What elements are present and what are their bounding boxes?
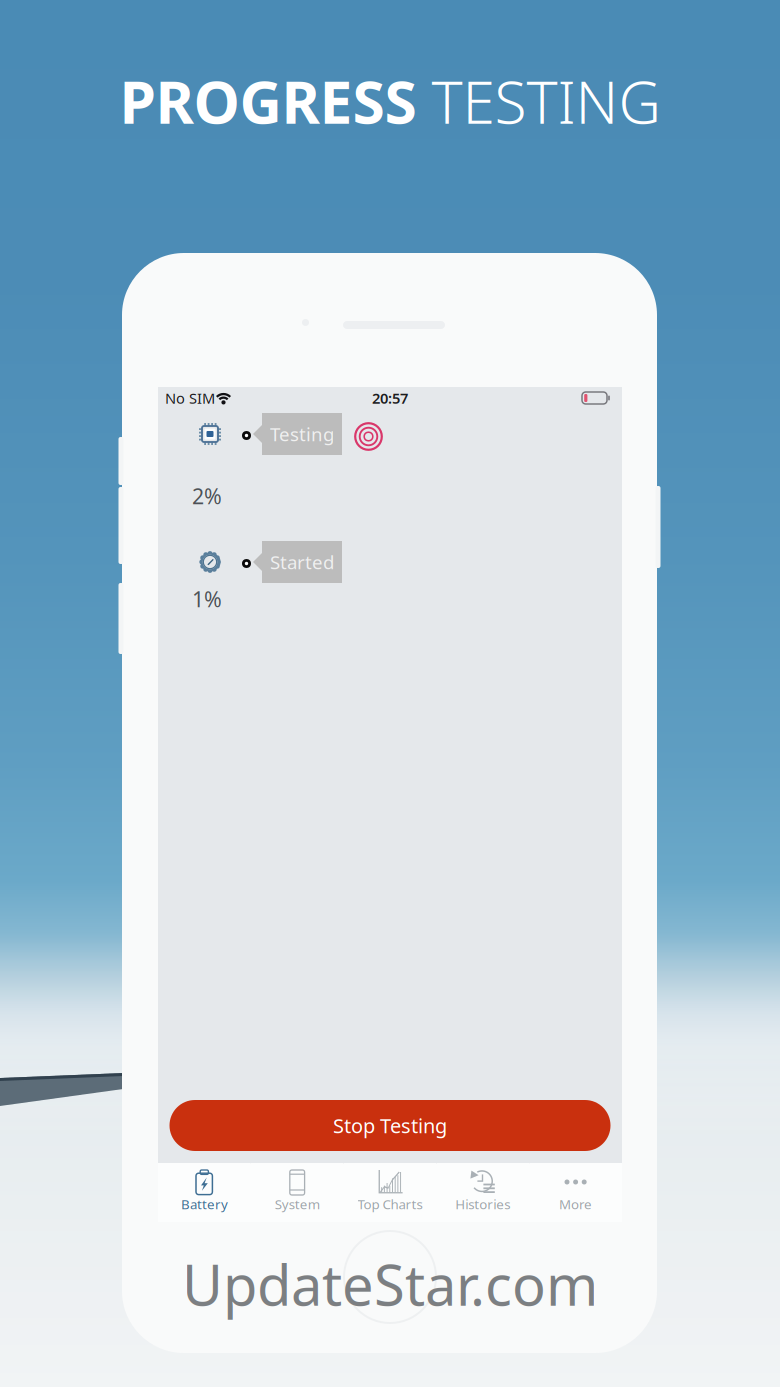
staticText: Top Charts [357,1195,422,1213]
staticText: Histories [455,1195,510,1213]
staticText: Started [270,550,334,574]
staticText: More [559,1195,592,1213]
staticText: System [275,1195,320,1213]
staticText: Battery [181,1195,228,1213]
staticText: No SIM [165,388,215,408]
button[interactable]: Battery [158,1163,251,1222]
staticText: PROGRESS [119,62,416,140]
staticText: Stop Testing [333,1112,447,1139]
staticText: 1% [192,585,222,613]
staticText: Testing [270,422,334,446]
staticText: TESTING [416,62,660,140]
button[interactable]: Stop Testing [169,1100,610,1151]
button[interactable]: Top Charts [344,1163,436,1222]
button[interactable]: More [529,1163,622,1222]
staticText: 20:57 [372,388,408,408]
staticText: UpdateStar.com [182,1247,598,1321]
button[interactable]: System [251,1163,344,1222]
staticText: 2% [192,482,222,510]
button[interactable]: Histories [436,1163,529,1222]
